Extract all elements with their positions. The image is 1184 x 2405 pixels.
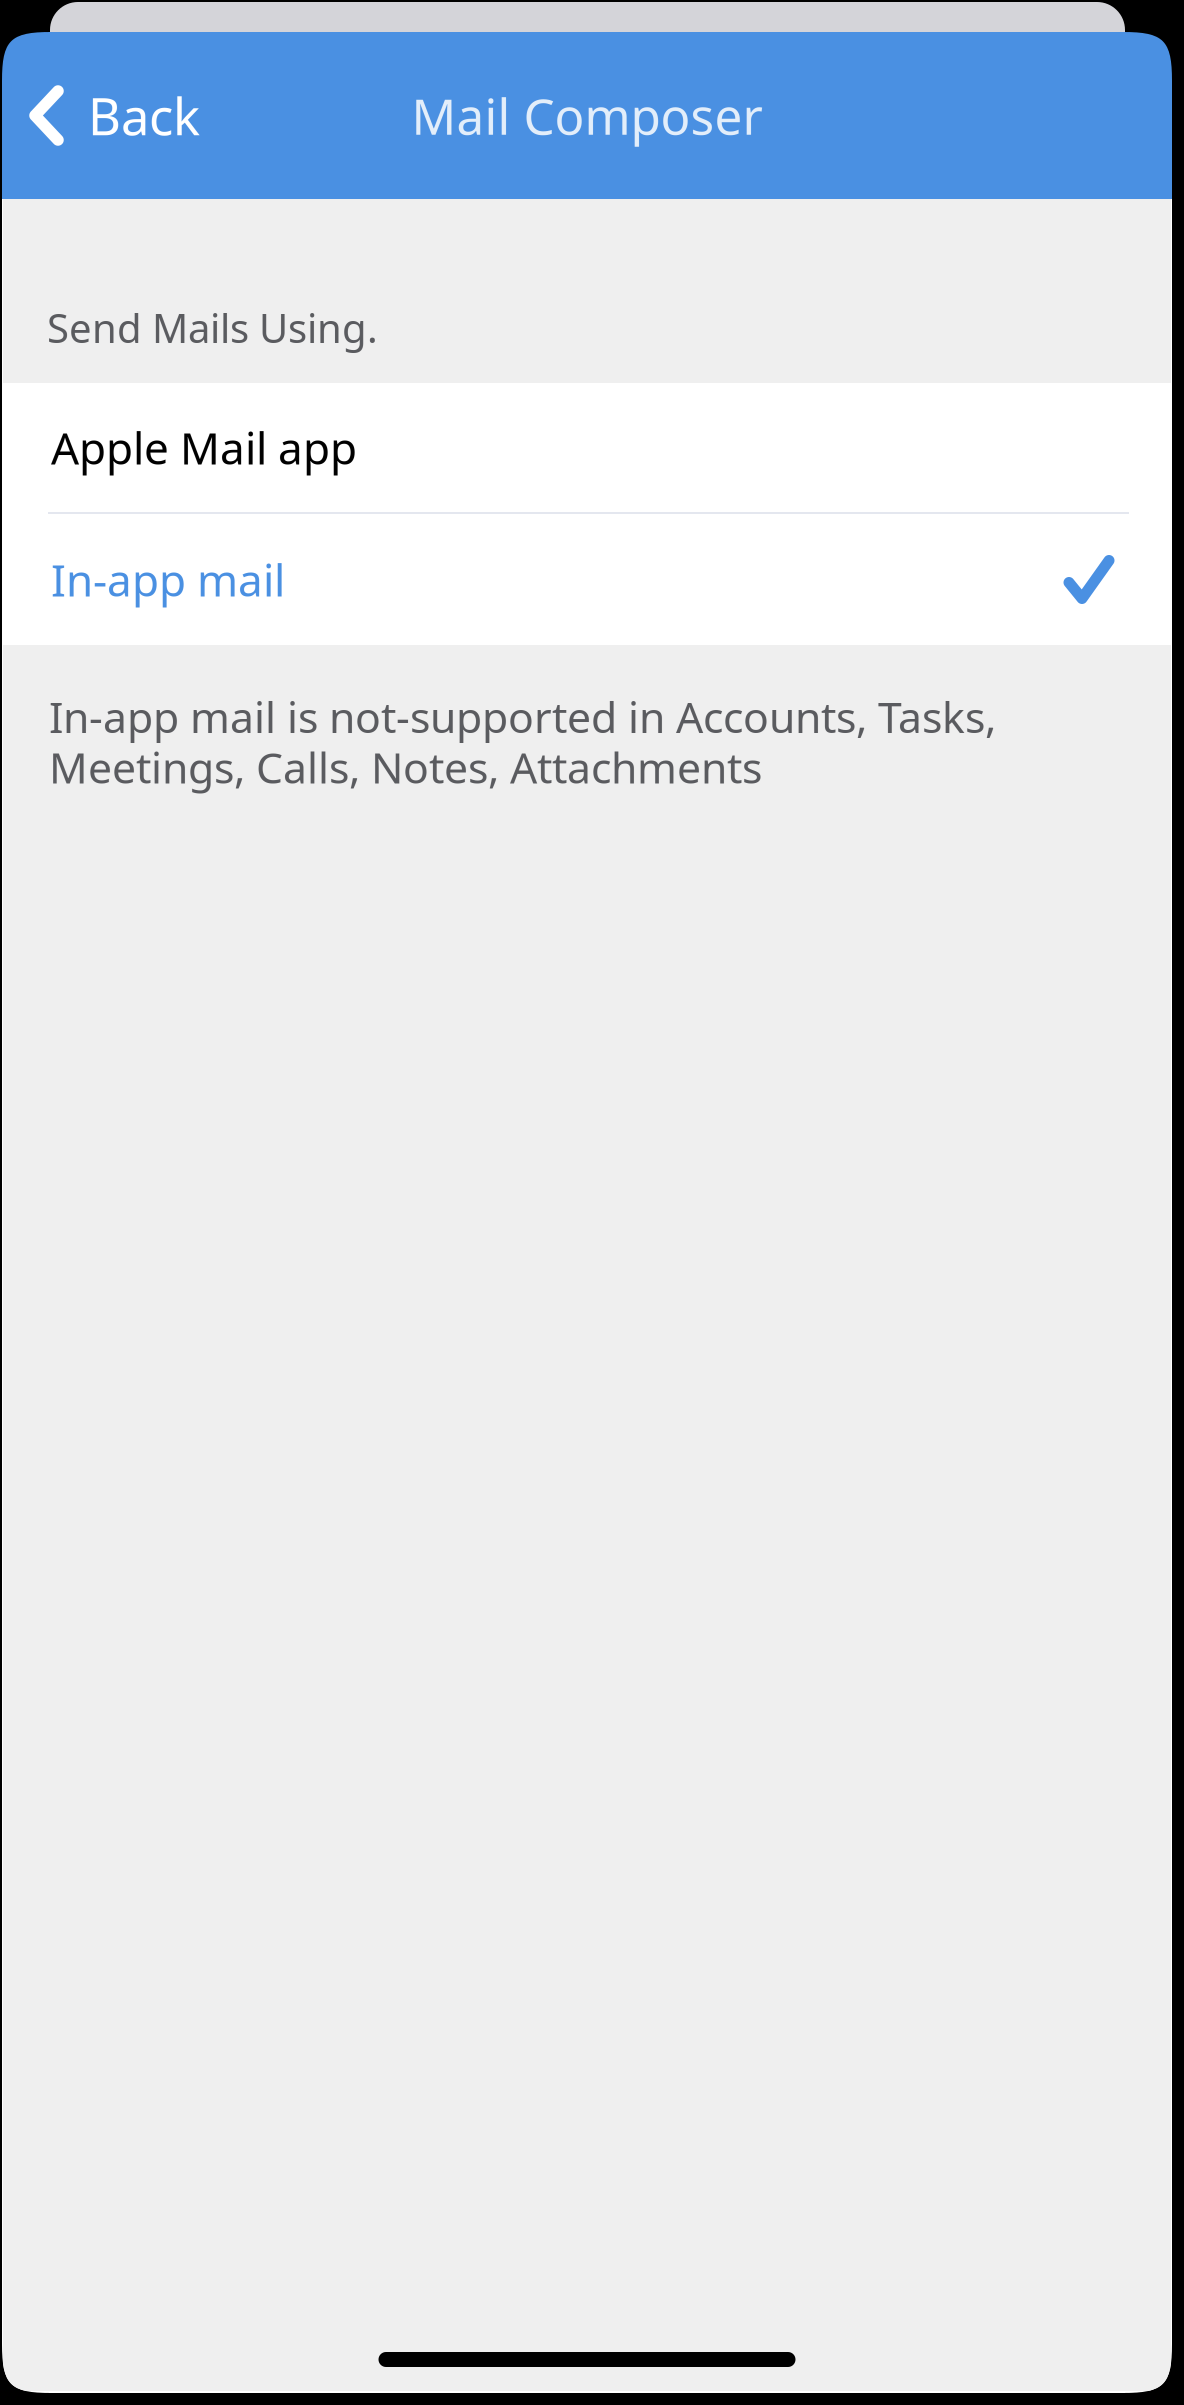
- button[interactable]: Back: [2, 50, 302, 180]
- staticText: Meetings, Calls, Notes, Attachments: [49, 739, 762, 795]
- button[interactable]: In-app mail: [3, 514, 1171, 645]
- staticText: Send Mails Using.: [47, 301, 378, 354]
- staticText: Mail Composer: [411, 83, 762, 148]
- button[interactable]: Apple Mail app: [3, 383, 1171, 512]
- staticText: Apple Mail app: [51, 418, 357, 477]
- staticText: In-app mail: [51, 550, 285, 609]
- staticText: In-app mail is not-supported in Accounts…: [49, 688, 996, 745]
- staticText: Back: [88, 82, 200, 149]
